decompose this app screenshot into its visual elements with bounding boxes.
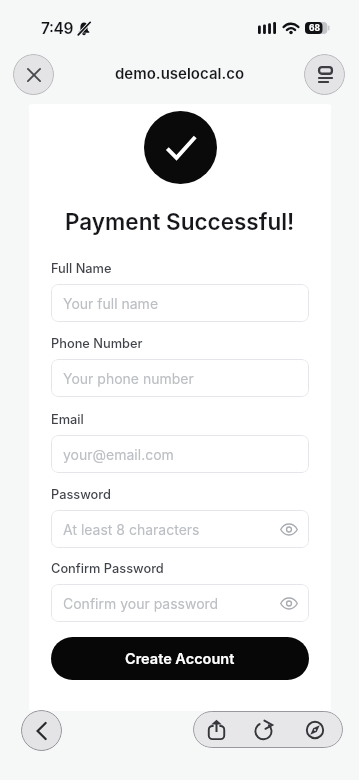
staticText: demo.uselocal.co <box>115 64 245 82</box>
staticText: Create Account <box>125 650 235 668</box>
staticText: 68 <box>309 23 321 33</box>
button[interactable]: Your full name <box>51 284 309 322</box>
staticText: Password <box>51 487 111 502</box>
button[interactable]: Open in Safari <box>292 711 338 748</box>
button[interactable]: Reload page <box>241 711 287 748</box>
button[interactable]: Create Account <box>51 637 309 680</box>
staticText: Payment Successful! <box>65 208 295 235</box>
button[interactable]: your@email.com <box>51 435 309 473</box>
staticText: Your full name <box>63 295 159 312</box>
button[interactable]: Back <box>21 710 62 751</box>
staticText: Your phone number <box>63 370 194 387</box>
staticText: At least 8 characters <box>63 521 200 538</box>
staticText: Email <box>51 412 84 427</box>
other: Show password <box>280 597 298 610</box>
button[interactable]: Confirm your password <box>51 584 309 622</box>
staticText: 7:49 <box>41 19 73 38</box>
staticText: Phone Number <box>51 336 143 351</box>
staticText: Confirm Password <box>51 561 164 576</box>
staticText: Full Name <box>51 261 112 276</box>
button[interactable]: Share <box>193 711 239 748</box>
staticText: Confirm your password <box>63 595 219 612</box>
button[interactable]: Reader view <box>304 54 345 95</box>
button[interactable]: At least 8 characters <box>51 510 309 548</box>
staticText: your@email.com <box>63 446 174 463</box>
button[interactable]: Close <box>13 54 54 95</box>
other: Show password <box>280 523 298 536</box>
button[interactable]: Your phone number <box>51 359 309 397</box>
